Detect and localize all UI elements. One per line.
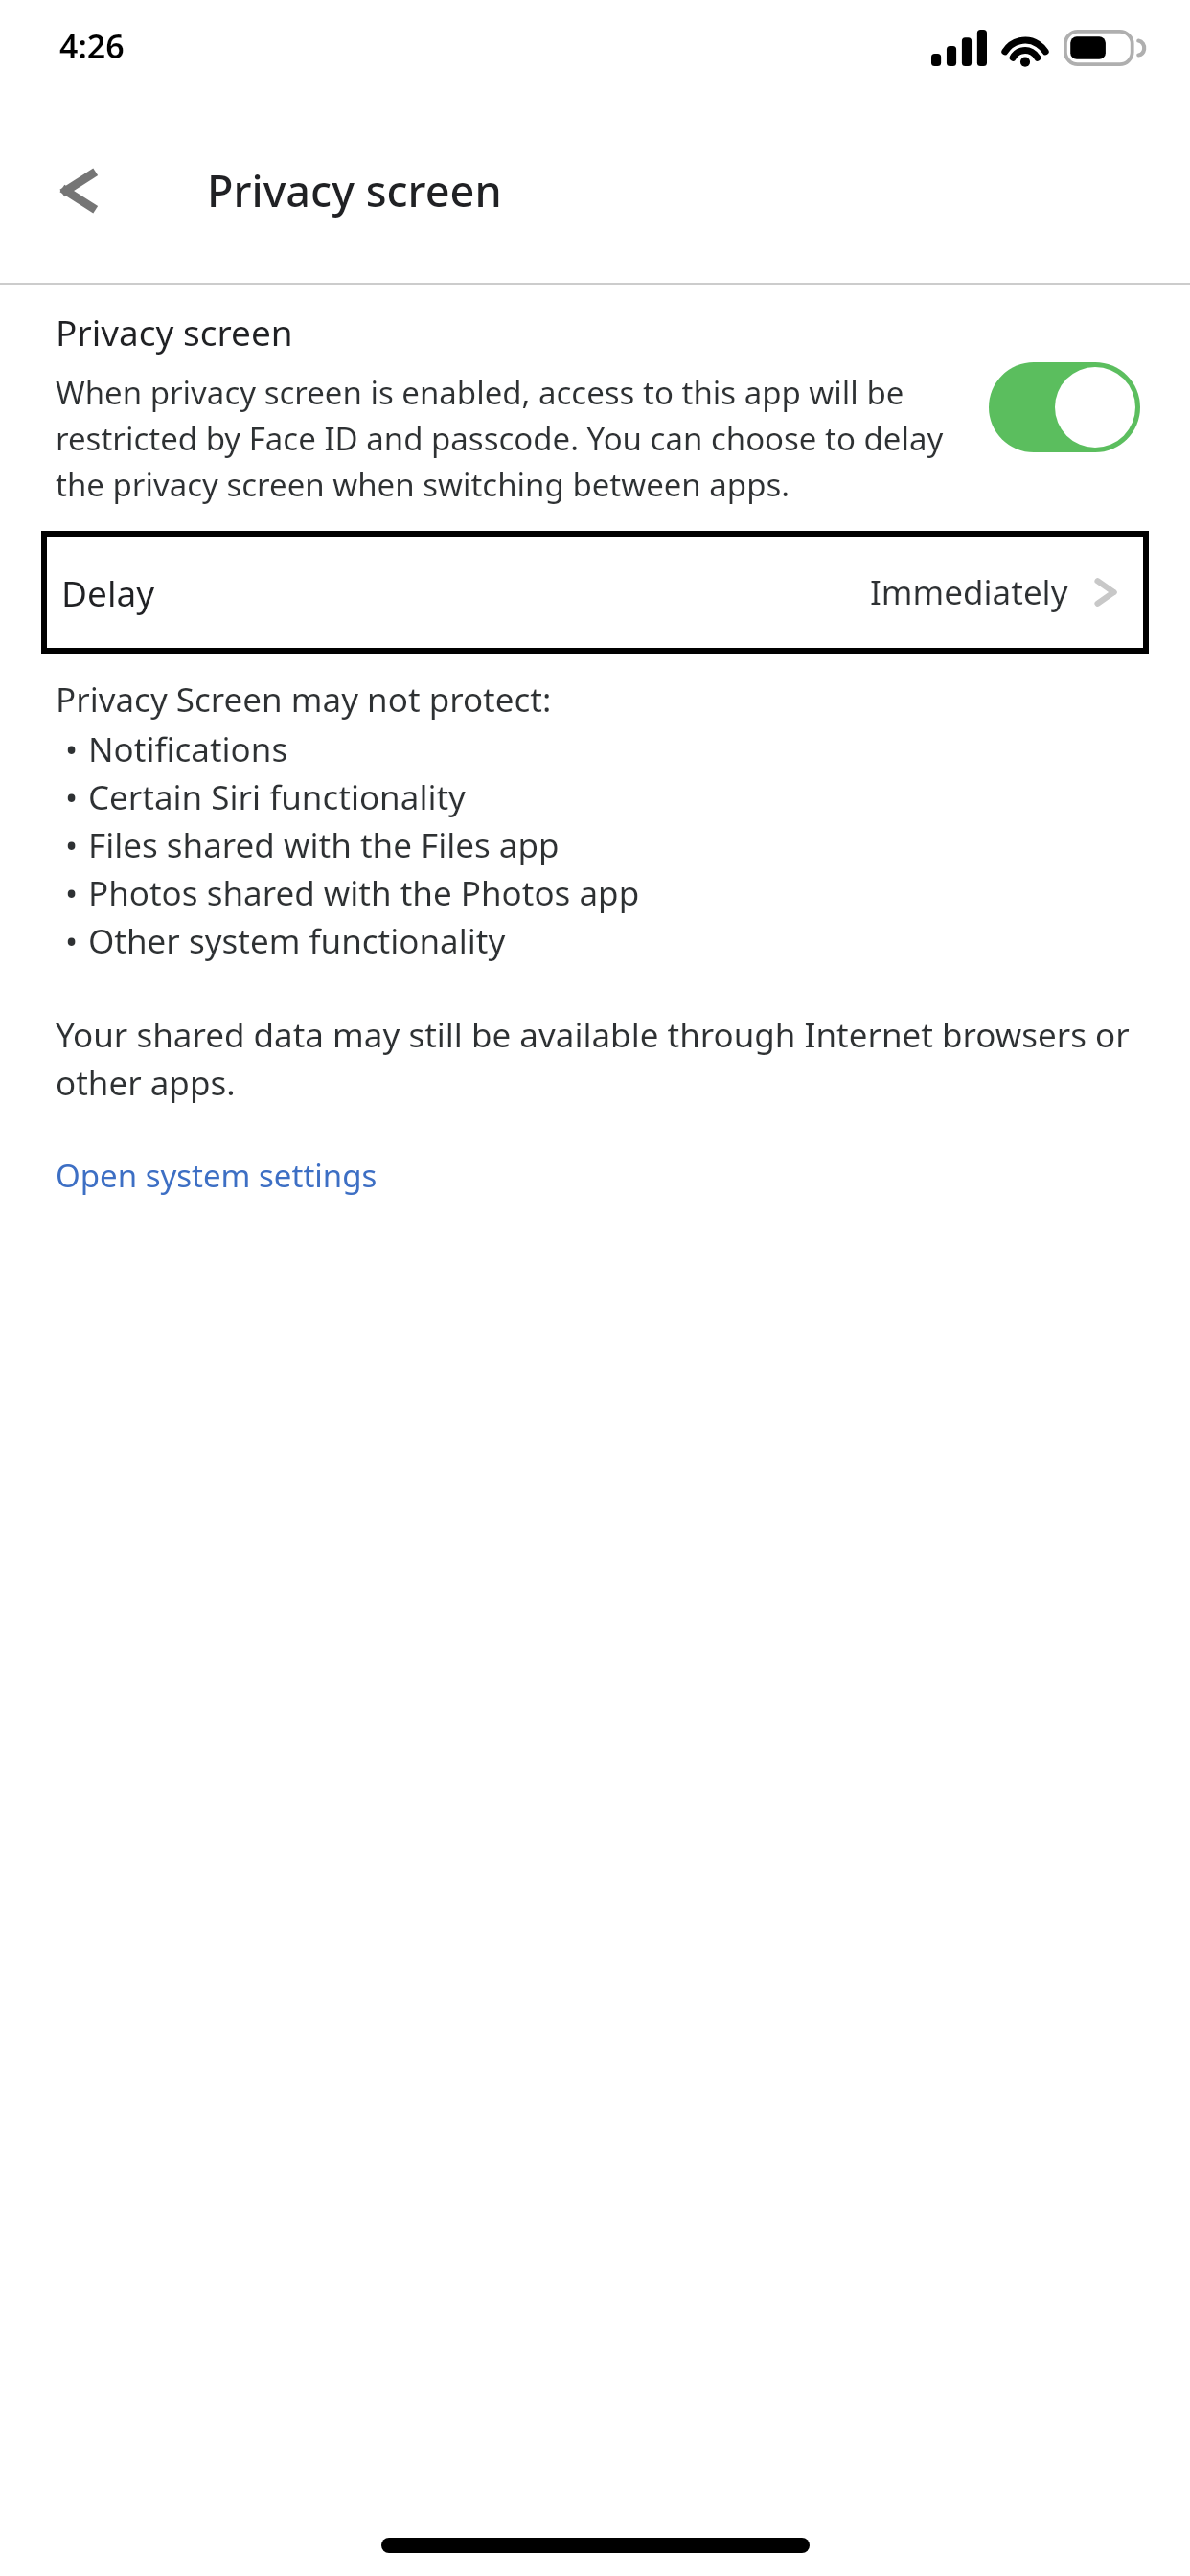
staticText: Photos shared with the Photos app — [88, 868, 640, 916]
staticText: Other system functionality — [88, 916, 506, 964]
staticText: Delay — [61, 568, 155, 616]
staticText: Privacy screen — [56, 308, 293, 356]
button[interactable]: Privacy screen toggle — [989, 362, 1140, 452]
staticText: Your shared data may still be available … — [56, 1010, 1140, 1106]
staticText: • — [65, 820, 79, 868]
staticText: Immediately — [870, 569, 1068, 615]
staticText: 4:26 — [59, 24, 125, 68]
staticText: Open system settings — [56, 1154, 378, 1197]
staticText: When privacy screen is enabled, access t… — [56, 368, 968, 506]
button[interactable]: Privacy screen — [0, 285, 1190, 516]
staticText: • — [65, 868, 79, 916]
staticText: • — [65, 772, 79, 820]
staticText: • — [65, 724, 79, 772]
staticText: Certain Siri functionality — [88, 772, 466, 820]
staticText: Privacy Screen may not protect: — [56, 675, 552, 723]
button[interactable]: Back — [33, 145, 125, 237]
staticText: Notifications — [88, 724, 288, 772]
staticText: Files shared with the Files app — [88, 820, 560, 868]
staticText: Privacy screen — [207, 161, 502, 219]
button[interactable]: Open system settings — [56, 1154, 378, 1197]
staticText: • — [65, 916, 79, 964]
button[interactable]: Delay — [41, 531, 1149, 654]
